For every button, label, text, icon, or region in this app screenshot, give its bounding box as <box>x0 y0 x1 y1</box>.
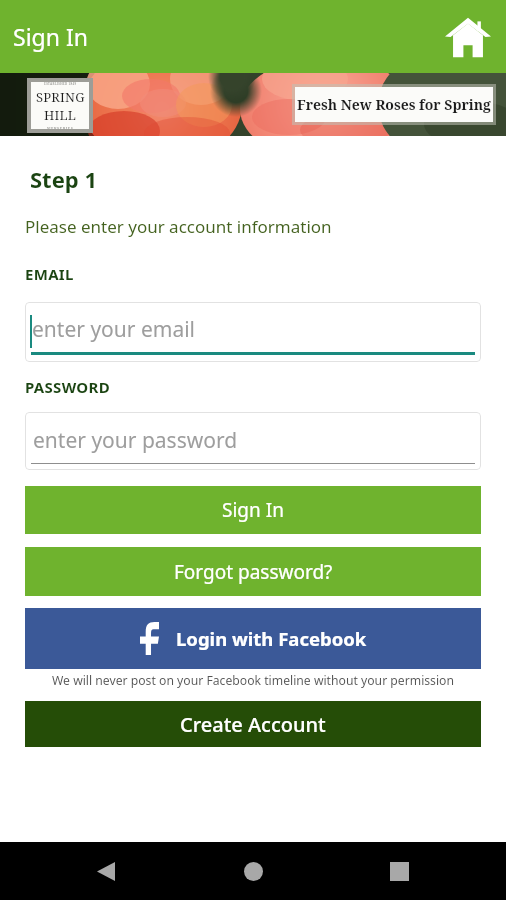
staticText: enter your email <box>32 315 196 344</box>
staticText: Forgot password? <box>174 559 333 585</box>
button[interactable]: Back <box>82 847 130 895</box>
button[interactable]: Create Account <box>25 701 481 747</box>
staticText: SPRING <box>36 88 85 106</box>
staticText: enter your password <box>33 426 238 455</box>
staticText: NURSERIES <box>47 126 74 129</box>
staticText: Sign In <box>222 497 284 523</box>
button[interactable]: Forgot password? <box>25 547 481 596</box>
staticText: EMAIL <box>25 264 74 284</box>
staticText: We will never post on your Facebook time… <box>0 672 506 689</box>
staticText: Please enter your account information <box>25 215 332 238</box>
staticText: HILL <box>44 106 77 124</box>
button[interactable]: Recent apps <box>375 847 423 895</box>
staticText: Create Account <box>180 711 326 738</box>
button[interactable]: enter your email <box>25 302 481 362</box>
button[interactable]: Home <box>444 13 492 61</box>
button[interactable]: Sign In <box>25 486 481 534</box>
staticText: ESTABLISHED 1849 <box>44 82 77 86</box>
staticText: Fresh New Roses for Spring <box>297 95 491 114</box>
button[interactable]: Home <box>229 847 277 895</box>
staticText: Step 1 <box>30 164 98 194</box>
staticText: Sign In <box>13 21 88 52</box>
staticText: PASSWORD <box>25 377 110 397</box>
button[interactable]: enter your password <box>25 412 481 470</box>
button[interactable]: Login with Facebook <box>25 608 481 669</box>
staticText: Login with Facebook <box>176 626 367 651</box>
